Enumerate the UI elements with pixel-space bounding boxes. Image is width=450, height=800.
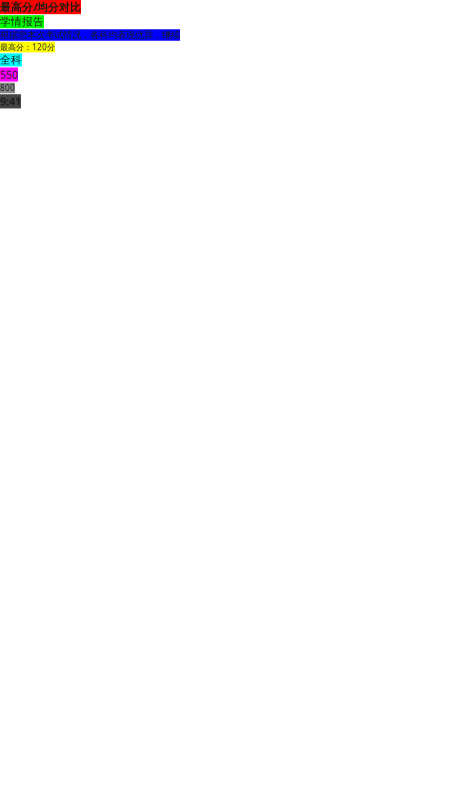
staticText: 550 <box>0 67 18 82</box>
staticText: 全科 <box>0 53 22 66</box>
staticText: 800 <box>0 83 15 93</box>
staticText: 学情报告 <box>0 15 44 28</box>
staticText: 9:41 <box>0 94 21 108</box>
staticText: 最高分：120分 <box>0 42 55 52</box>
staticText: 最高分/均分对比 <box>0 0 81 14</box>
staticText: 根据您本次考试情况，各科均表现优异，继续 <box>0 29 180 41</box>
